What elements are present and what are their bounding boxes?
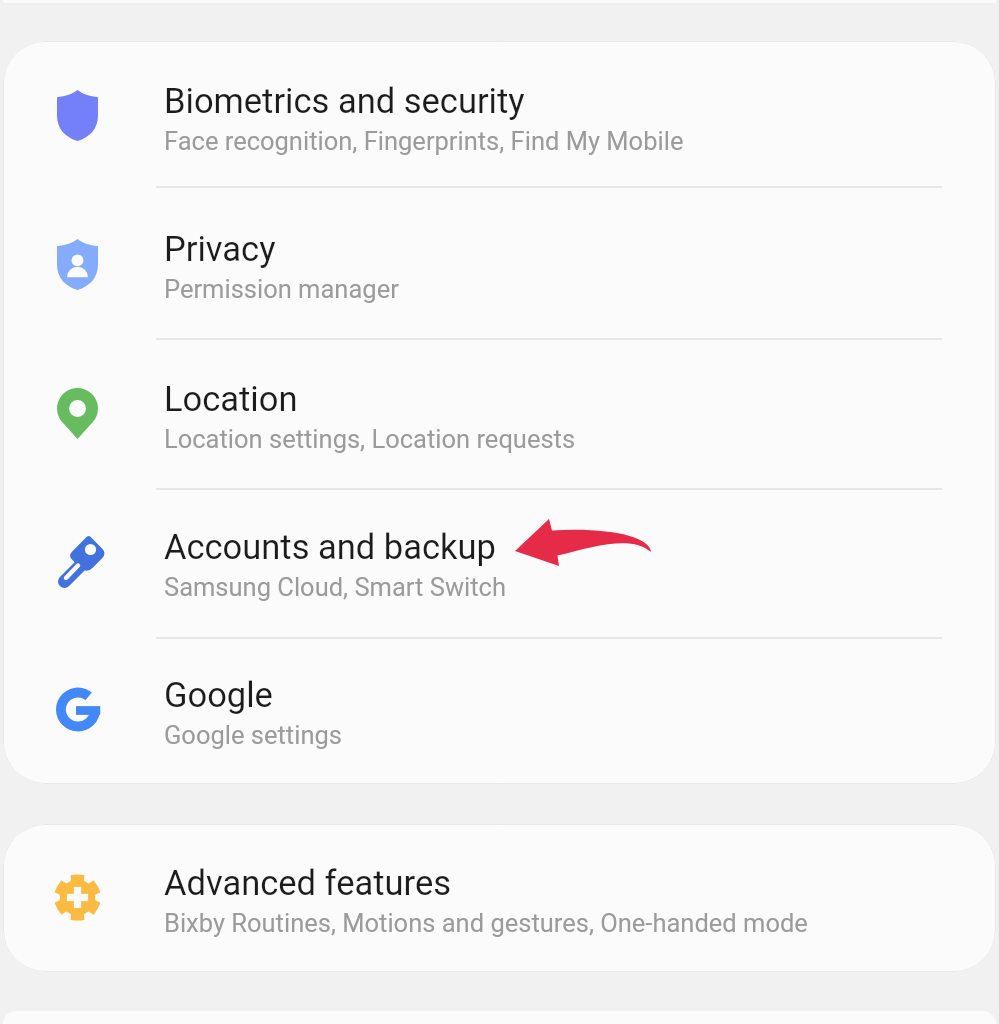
staticText: Face recognition, Fingerprints, Find My … (164, 126, 684, 156)
button[interactable]: Advanced features (3, 824, 996, 972)
button[interactable]: Accounts and backup (3, 490, 996, 639)
staticText: Bixby Routines, Motions and gestures, On… (164, 908, 808, 938)
staticText: Biometrics and security (164, 81, 525, 121)
other: Pointer annotation (0, 0, 999, 1024)
staticText: Google settings (164, 720, 342, 750)
staticText: Accounts and backup (164, 527, 496, 567)
staticText: Location settings, Location requests (164, 424, 576, 454)
button[interactable]: Privacy (3, 188, 996, 340)
staticText: Location (164, 379, 298, 419)
staticText: Google (164, 675, 273, 715)
staticText: Permission manager (164, 274, 399, 304)
button[interactable]: Biometrics and security (3, 41, 996, 188)
staticText: Advanced features (164, 863, 452, 903)
button[interactable]: Location (3, 340, 996, 490)
staticText: Samsung Cloud, Smart Switch (164, 572, 506, 602)
button[interactable]: Google (3, 639, 996, 784)
staticText: Privacy (164, 229, 276, 269)
